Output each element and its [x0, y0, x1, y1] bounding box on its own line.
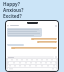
button[interactable]: [48, 65, 54, 67]
button[interactable]: [31, 38, 57, 40]
button[interactable]: [7, 44, 24, 46]
button[interactable]: [20, 65, 25, 67]
button[interactable]: [47, 59, 52, 61]
button[interactable]: [42, 59, 47, 61]
button[interactable]: [36, 62, 41, 64]
button[interactable]: [14, 62, 20, 64]
button[interactable]: [30, 65, 36, 67]
button[interactable]: [52, 59, 57, 61]
button[interactable]: [37, 41, 57, 43]
button[interactable]: [12, 59, 17, 61]
button[interactable]: [41, 62, 46, 64]
staticText: Happy?: [3, 1, 61, 7]
button[interactable]: [51, 62, 56, 64]
button[interactable]: [8, 62, 14, 64]
button[interactable]: [31, 62, 36, 64]
other: Back: [7, 25, 9, 27]
button[interactable]: [7, 28, 42, 37]
button[interactable]: Backspace: [54, 65, 57, 67]
button[interactable]: [22, 59, 27, 61]
button[interactable]: [10, 65, 15, 67]
button[interactable]: [37, 59, 42, 61]
button[interactable]: [7, 59, 12, 61]
button[interactable]: [42, 65, 48, 67]
staticText: Anxious?: [3, 7, 61, 13]
button[interactable]: Numbers: [7, 68, 10, 70]
button[interactable]: [7, 56, 54, 58]
button[interactable]: [20, 62, 26, 64]
button[interactable]: Space: [12, 68, 53, 70]
button[interactable]: [25, 65, 30, 67]
button[interactable]: [27, 59, 32, 61]
button[interactable]: [26, 62, 31, 64]
button[interactable]: [17, 59, 22, 61]
button[interactable]: [46, 62, 51, 64]
button[interactable]: Emoji: [10, 68, 12, 70]
staticText: Excited?: [3, 13, 61, 19]
button[interactable]: Return: [53, 68, 57, 70]
button[interactable]: Shift: [7, 65, 10, 67]
button[interactable]: [36, 65, 42, 67]
button[interactable]: Back: [6, 24, 58, 27]
button[interactable]: [32, 59, 37, 61]
button[interactable]: [11, 47, 57, 49]
button[interactable]: [15, 65, 20, 67]
